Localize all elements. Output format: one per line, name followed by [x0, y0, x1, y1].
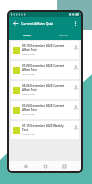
button[interactable]: Recents [61, 163, 68, 170]
button[interactable]: Home [42, 163, 49, 170]
staticText: Test [22, 128, 28, 132]
button[interactable]: Download [73, 64, 78, 69]
staticText: Attempt Now [22, 133, 35, 136]
button[interactable]: 09-10 December 2020 Current [11, 41, 79, 59]
button[interactable]: Download [73, 44, 78, 49]
button[interactable]: 01-15 December 2020 Weekly [11, 121, 79, 139]
button[interactable]: Download [73, 104, 78, 109]
staticText: 05-06 December 2020 Current [22, 84, 65, 88]
staticText: 07-08 December 2020 Current [22, 64, 65, 68]
button[interactable]: Back [22, 163, 29, 170]
button[interactable]: Download [73, 84, 78, 89]
staticText: 01-15 December 2020 Weekly [22, 124, 64, 128]
staticText: Attempt Now [22, 113, 35, 116]
staticText: Affair Test [22, 108, 37, 112]
button[interactable]: 05-06 December 2020 Current [11, 81, 79, 99]
staticText: Attempt Now [22, 73, 35, 76]
button[interactable]: Back [11, 19, 20, 28]
button[interactable]: More options [71, 19, 79, 27]
staticText: 09-10 December 2020 Current [22, 44, 65, 48]
staticText: Current Affairs Quiz [21, 21, 54, 26]
button[interactable]: LATEST [9, 29, 45, 40]
staticText: LATEST [23, 33, 32, 36]
staticText: Affair Test [22, 48, 37, 52]
staticText: 03-04 December 2020 Current [22, 104, 65, 108]
staticText: Attempt Now [22, 53, 35, 56]
staticText: Affair Test [22, 68, 37, 72]
button[interactable]: 07-08 December 2020 Current [11, 61, 79, 79]
button[interactable]: Download [73, 124, 78, 129]
button[interactable]: RESULT [45, 29, 81, 40]
staticText: Attempt Now [22, 93, 35, 96]
staticText: RESULT [59, 33, 68, 36]
button[interactable]: 03-04 December 2020 Current [11, 101, 79, 119]
staticText: Affair Test [22, 88, 37, 92]
